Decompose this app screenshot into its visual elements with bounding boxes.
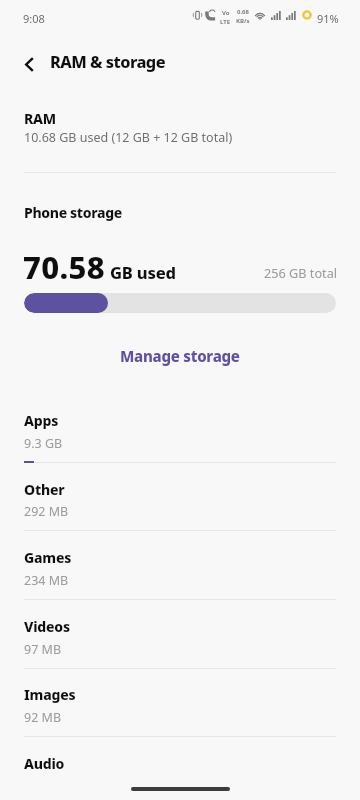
staticText: Videos xyxy=(24,617,70,636)
button[interactable] xyxy=(0,396,360,464)
staticText: Games xyxy=(24,548,72,567)
staticText: Audio xyxy=(24,754,65,773)
staticText: KB/s xyxy=(236,17,250,25)
button[interactable] xyxy=(0,739,360,800)
staticText: 9.3 GB xyxy=(24,435,63,452)
staticText: LTE xyxy=(220,18,231,26)
staticText: Images xyxy=(24,685,76,704)
staticText: 256 GB total xyxy=(264,264,338,281)
staticText: 234 MB xyxy=(24,572,69,589)
staticText: Vo xyxy=(222,9,230,17)
staticText: 9:08 xyxy=(23,11,45,26)
staticText: 0.68 xyxy=(237,8,249,16)
staticText: RAM xyxy=(24,109,56,128)
staticText: 70.58 xyxy=(23,246,106,288)
button[interactable] xyxy=(0,602,360,670)
staticText: 91% xyxy=(317,11,339,26)
staticText: Phone storage xyxy=(24,203,122,222)
staticText: Other xyxy=(24,480,65,499)
staticText: 97 MB xyxy=(24,641,62,658)
staticText: Apps xyxy=(24,411,59,430)
button[interactable]: Manage storage xyxy=(0,340,360,372)
staticText: GB used xyxy=(110,261,176,283)
button[interactable] xyxy=(0,533,360,601)
button[interactable]: Back xyxy=(8,43,50,85)
button[interactable] xyxy=(0,465,360,533)
staticText: 10.68 GB used (12 GB + 12 GB total) xyxy=(24,129,233,146)
button[interactable] xyxy=(0,670,360,738)
staticText: Manage storage xyxy=(120,346,240,366)
staticText: 92 MB xyxy=(24,709,62,726)
staticText: RAM & storage xyxy=(50,51,166,73)
staticText: 292 MB xyxy=(24,503,69,520)
